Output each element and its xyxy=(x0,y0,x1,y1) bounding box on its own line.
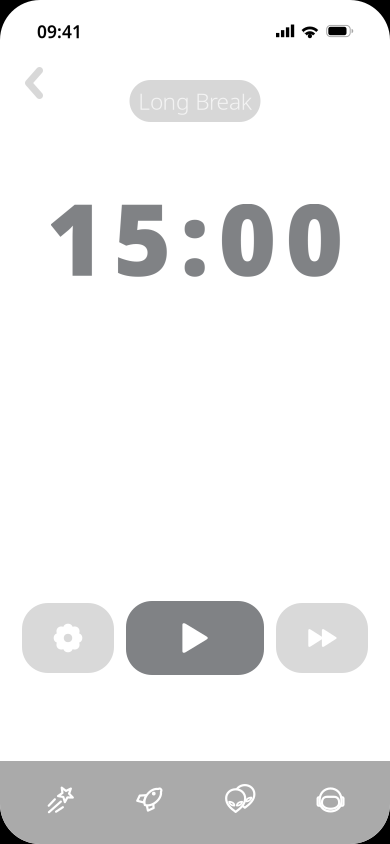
button[interactable]: Settings xyxy=(22,603,114,673)
button[interactable]: Missions xyxy=(104,784,195,814)
button[interactable]: Back xyxy=(0,59,59,107)
button[interactable]: Skip xyxy=(276,603,368,673)
button[interactable]: Focus xyxy=(14,784,104,814)
staticText: Long Break xyxy=(138,86,252,116)
button[interactable]: Profile xyxy=(285,784,376,814)
staticText: 09:41 xyxy=(37,20,82,43)
button[interactable]: Long Break xyxy=(129,80,260,122)
button[interactable]: Start xyxy=(126,601,264,675)
staticText: 15:00 xyxy=(46,172,343,303)
button[interactable]: Community xyxy=(195,784,285,814)
